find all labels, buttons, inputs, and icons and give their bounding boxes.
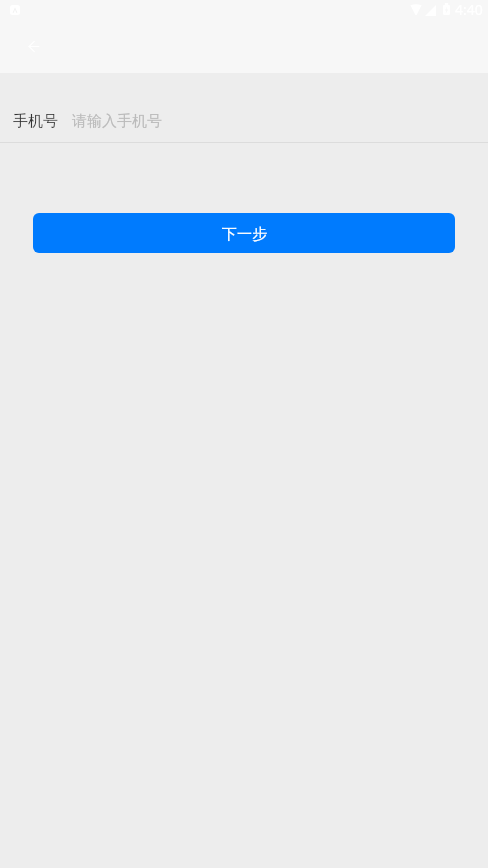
staticText: 请输入手机号 [72,112,162,131]
button[interactable]: 手机号 [0,73,488,143]
button[interactable]: 下一步 [33,213,455,253]
staticText: 手机号 [13,112,58,131]
staticText: 下一步 [222,225,267,244]
